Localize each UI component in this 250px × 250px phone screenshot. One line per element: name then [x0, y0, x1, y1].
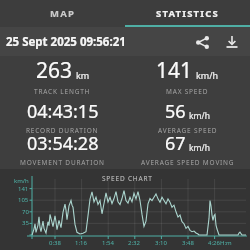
- staticText: AVERAGE SPEED: [158, 126, 218, 135]
- staticText: SPEED CHART: [102, 174, 153, 183]
- staticText: 3:10: [155, 239, 167, 247]
- staticText: km: [76, 69, 90, 81]
- button[interactable]: MAP: [0, 0, 125, 27]
- staticText: MAP: [50, 7, 76, 20]
- staticText: 56: [165, 99, 186, 124]
- staticText: 1:16: [75, 239, 87, 247]
- staticText: AVERAGE SPEED MOVING: [141, 158, 235, 167]
- staticText: 70: [22, 208, 29, 216]
- staticText: km/h: [189, 142, 210, 154]
- staticText: 263: [36, 56, 73, 85]
- button[interactable]: [188, 28, 216, 56]
- staticText: km/h: [189, 110, 210, 122]
- staticText: STATISTICS: [156, 7, 219, 20]
- staticText: H:m: [220, 239, 232, 247]
- staticText: 25 Sept 2025 09:56:21: [6, 34, 126, 50]
- staticText: 141: [18, 185, 29, 193]
- staticText: 4:26: [208, 239, 220, 247]
- staticText: 03:54:28: [27, 131, 99, 156]
- staticText: 67: [165, 131, 186, 156]
- staticText: 3:48: [182, 239, 194, 247]
- staticText: 0:38: [49, 239, 61, 247]
- staticText: RECORD DURATION: [26, 126, 99, 135]
- staticText: 35: [22, 219, 29, 227]
- staticText: 105: [18, 196, 29, 204]
- staticText: 04:43:15: [27, 99, 99, 124]
- staticText: TRACK LENGTH: [34, 87, 91, 96]
- button[interactable]: STATISTICS: [125, 0, 250, 27]
- staticText: MOVEMENT DURATION: [20, 158, 105, 167]
- staticText: 1:54: [102, 239, 114, 247]
- staticText: 2:32: [128, 239, 140, 247]
- button[interactable]: [218, 28, 246, 56]
- staticText: 141: [156, 56, 193, 85]
- staticText: km/h: [14, 177, 29, 185]
- staticText: km/h: [196, 69, 219, 81]
- staticText: MAX SPEED: [166, 87, 209, 96]
